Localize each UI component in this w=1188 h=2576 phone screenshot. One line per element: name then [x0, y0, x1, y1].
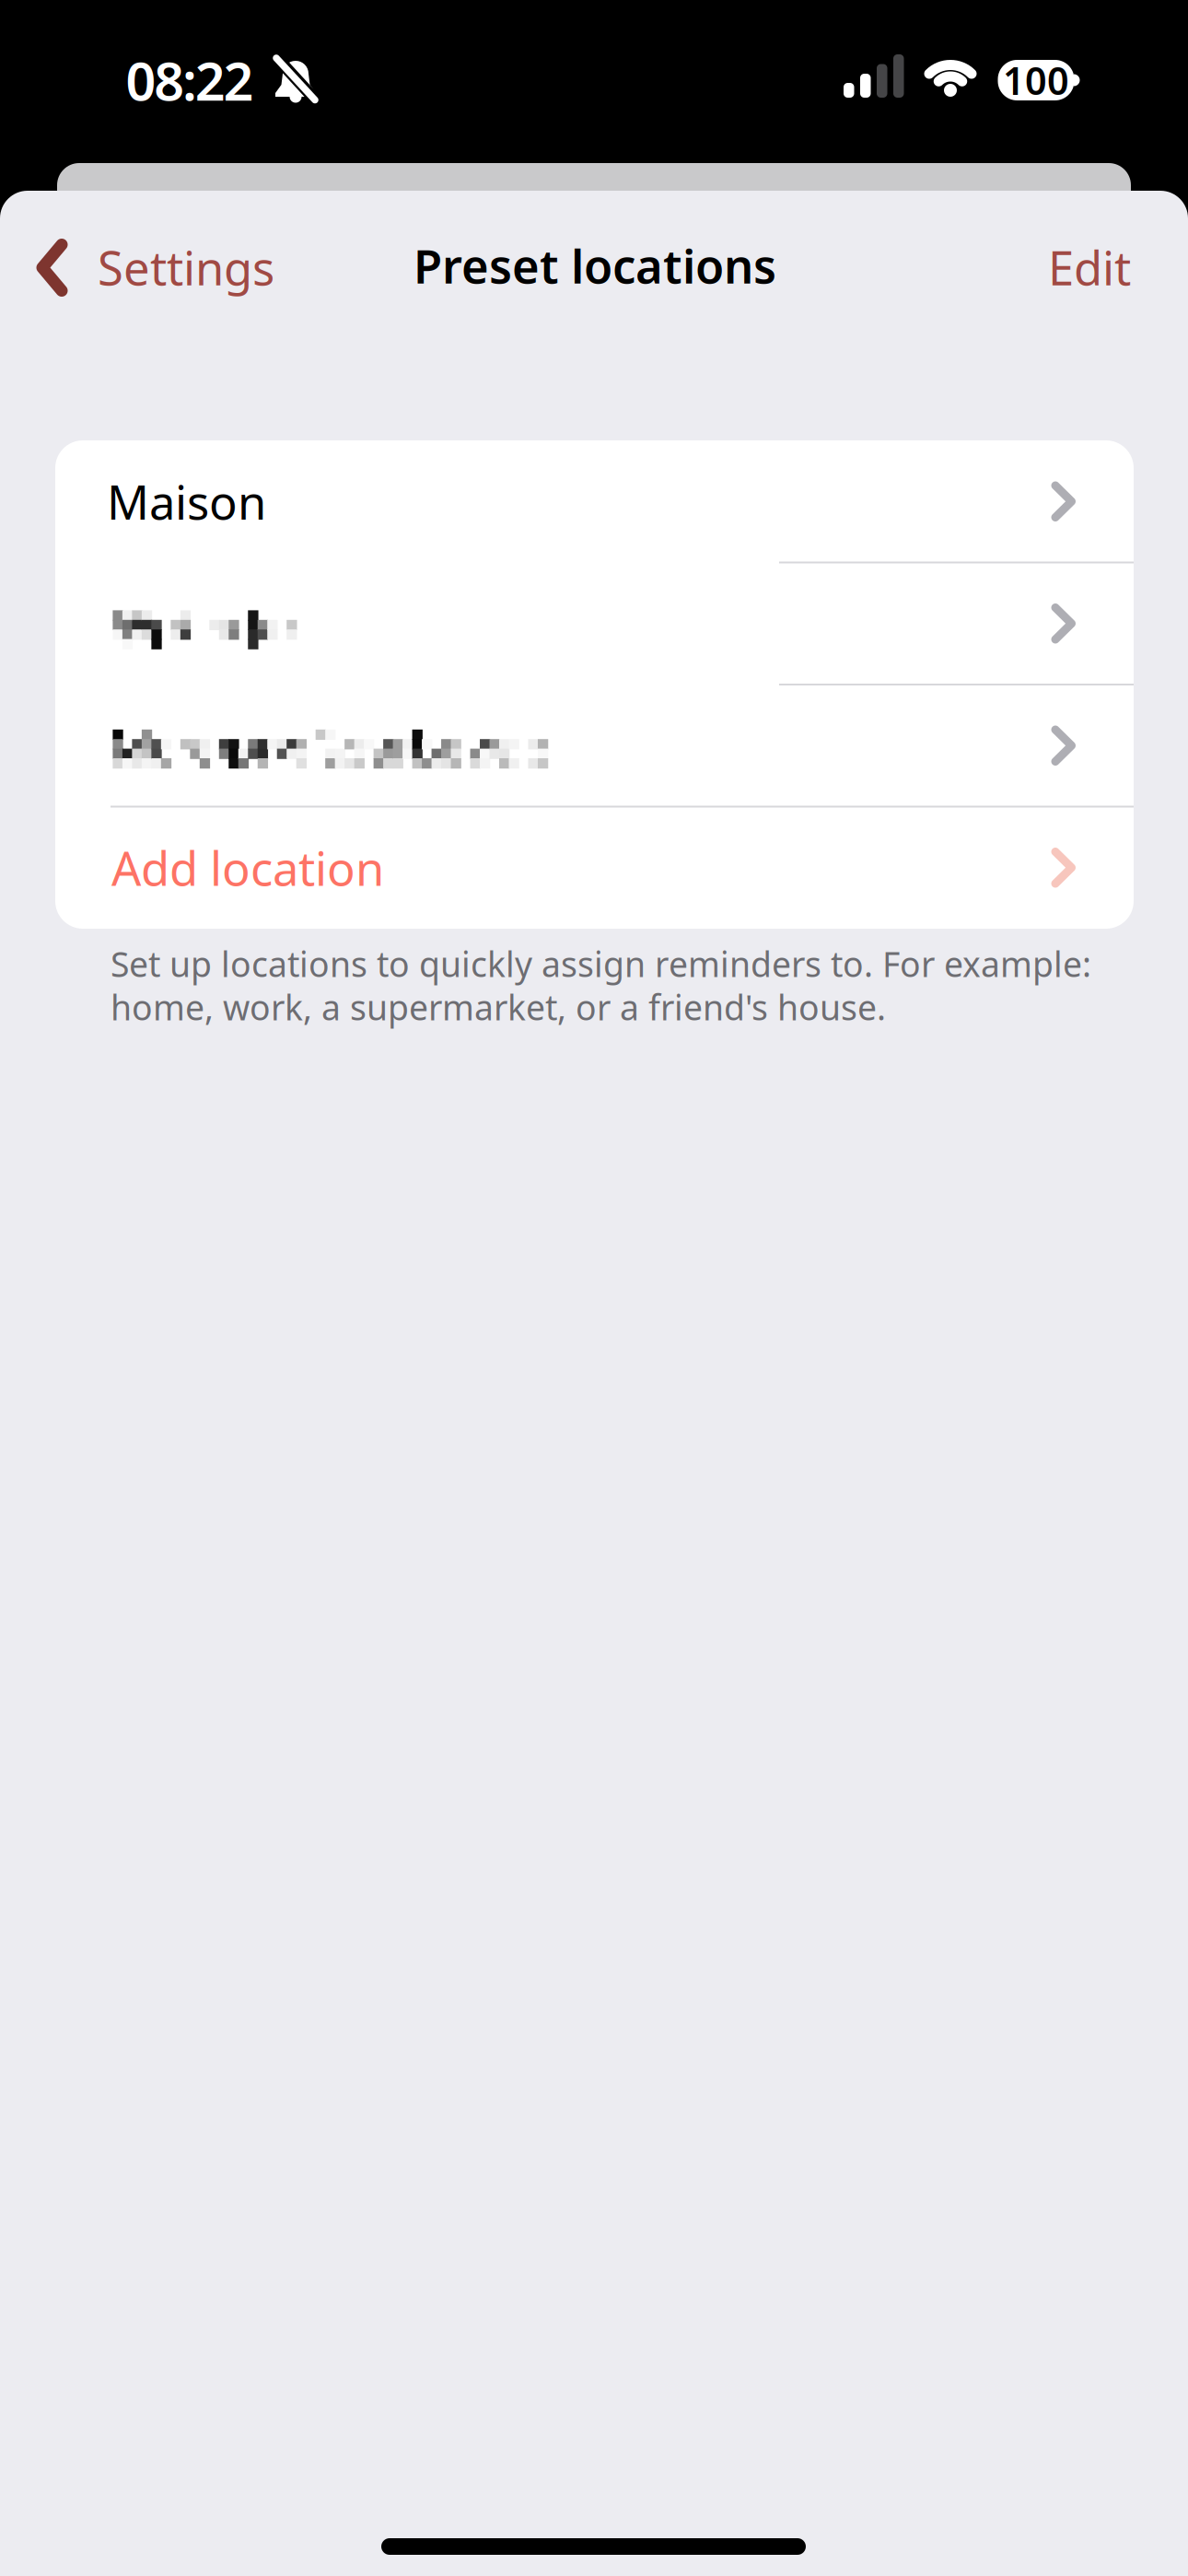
staticText: Set up locations to quickly assign remin…: [111, 941, 1091, 987]
staticText: home, work, a supermarket, or a friend's…: [111, 984, 886, 1030]
staticText: Preset locations: [413, 234, 776, 296]
button[interactable]: Add location: [107, 807, 1077, 928]
staticText: Settings: [98, 236, 274, 298]
button[interactable]: Location 2: [107, 563, 1077, 684]
staticText: 08:22: [126, 45, 254, 115]
button[interactable]: Edit: [855, 221, 1131, 313]
button[interactable]: Settings: [37, 221, 553, 313]
staticText: Add location: [111, 837, 384, 899]
staticText: Edit: [1048, 236, 1131, 298]
staticText: 100: [1003, 55, 1069, 105]
button[interactable]: Location 3: [107, 685, 1077, 806]
staticText: Maison: [107, 470, 266, 532]
button[interactable]: Maison: [107, 441, 1077, 562]
